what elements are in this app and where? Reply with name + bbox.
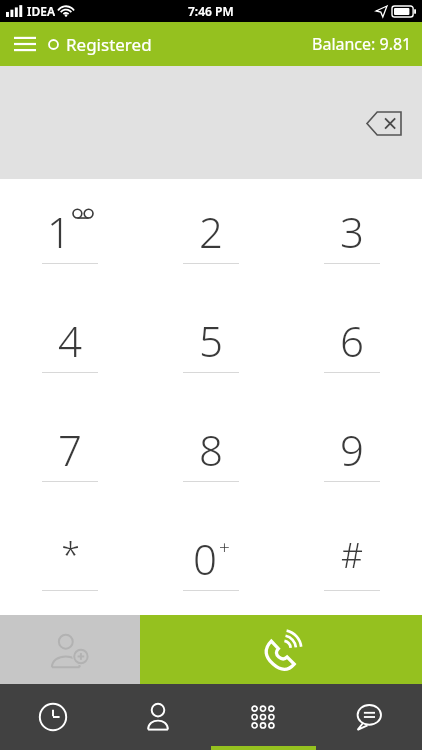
staticText: 2 [199, 203, 223, 253]
button[interactable]: 3 [281, 179, 422, 288]
button[interactable]: 7 [0, 397, 140, 506]
button[interactable]: 4 [0, 288, 140, 397]
staticText: IDEA [27, 3, 55, 19]
button[interactable]: 9 [281, 397, 422, 506]
button[interactable]: # [281, 506, 422, 615]
button[interactable]: * [0, 506, 140, 615]
staticText: + [219, 534, 230, 560]
button[interactable]: Recents [0, 684, 105, 750]
button[interactable]: Add contact [0, 615, 140, 684]
staticText: Registered [66, 33, 152, 56]
button[interactable]: Call [140, 615, 422, 684]
button[interactable]: Keypad [210, 684, 316, 750]
staticText: 9 [340, 421, 364, 471]
staticText: 3 [340, 203, 364, 253]
button[interactable]: Messages [316, 684, 422, 750]
staticText: 7:46 PM [188, 3, 234, 19]
staticText: 6 [340, 312, 364, 362]
staticText: 7 [58, 421, 82, 471]
staticText: 5 [199, 312, 223, 362]
staticText: 8 [199, 421, 223, 471]
staticText: # [341, 532, 363, 578]
button[interactable]: 5 [140, 288, 281, 397]
button[interactable]: Contacts [105, 684, 210, 750]
button[interactable]: Backspace [360, 103, 408, 143]
button[interactable]: 2 [140, 179, 281, 288]
staticText: Balance: 9.81 [312, 33, 412, 55]
staticText: 4 [58, 312, 82, 362]
button[interactable]: 6 [281, 288, 422, 397]
staticText: * [61, 532, 80, 578]
button[interactable]: 8 [140, 397, 281, 506]
staticText: 1 [47, 203, 71, 253]
button[interactable]: Menu [10, 29, 40, 59]
button[interactable]: 0 [140, 506, 281, 615]
staticText: 0 [193, 530, 217, 580]
button[interactable]: 1 [0, 179, 140, 288]
